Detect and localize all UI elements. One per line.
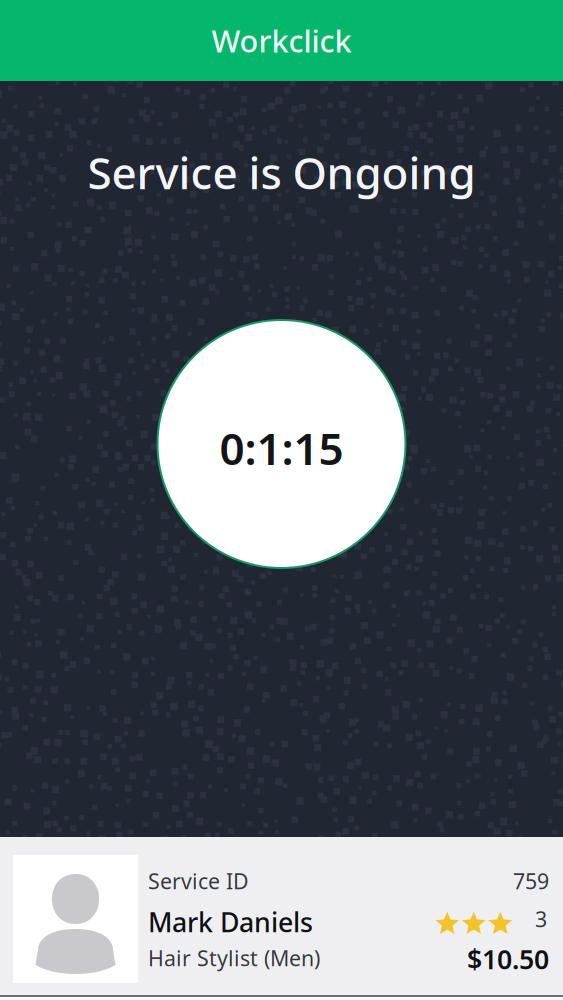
staticText: 759: [513, 867, 549, 895]
staticText: 0:1:15: [219, 419, 343, 477]
staticText: Hair Stylist (Men): [148, 944, 320, 972]
button[interactable]: Elapsed service time 0:1:15: [157, 320, 405, 568]
staticText: Mark Daniels: [148, 904, 313, 940]
staticText: Service ID: [148, 867, 249, 895]
button[interactable]: Service ID: [0, 844, 563, 994]
staticText: $10.50: [467, 941, 549, 977]
staticText: Workclick: [211, 20, 351, 61]
staticText: 3: [535, 905, 547, 933]
staticText: Service is Ongoing: [87, 143, 475, 201]
